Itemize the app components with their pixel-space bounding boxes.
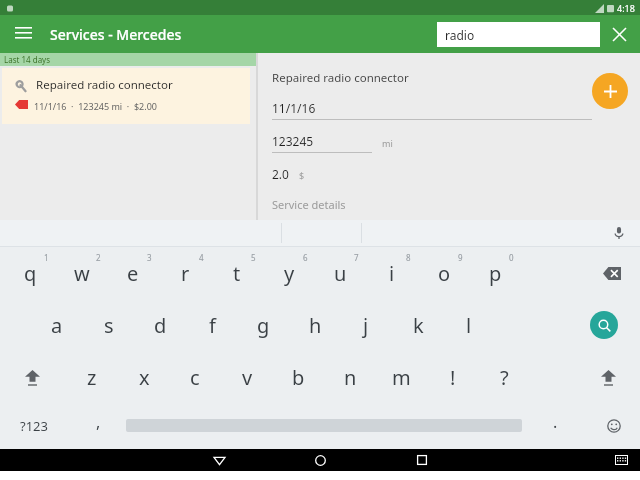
staticText: r [181,260,190,287]
button[interactable]: j [341,299,391,351]
button[interactable]: Open navigation menu [8,19,38,49]
staticText: . [553,411,558,433]
staticText: 11/1/16 [272,100,316,116]
button[interactable]: Switch keyboard [610,449,632,471]
staticText: 7 [354,252,359,263]
staticText: radio [445,27,475,43]
button[interactable]: Emoji [600,412,628,440]
staticText: 6 [303,252,308,263]
staticText: i [389,260,395,287]
button[interactable]: s [84,299,134,351]
button[interactable]: Repaired radio connector [2,68,250,124]
staticText: g [257,312,270,339]
staticText: h [309,312,322,339]
button[interactable]: p [470,247,520,299]
button[interactable]: , [78,406,118,446]
button[interactable]: r [160,247,210,299]
button[interactable]: q [5,247,55,299]
staticText: 5 [251,252,256,263]
staticText: 11/1/16 · 123245 mi · $2.00 [34,100,157,112]
button[interactable]: Search [590,311,618,339]
staticText: Repaired radio connector [272,70,409,86]
button[interactable]: x [119,351,169,403]
staticText: t [233,260,241,287]
staticText: w [74,260,90,287]
staticText: s [104,312,114,339]
button[interactable]: ? [479,351,529,403]
staticText: ! [450,364,456,391]
staticText: e [127,260,139,287]
staticText: j [363,312,369,339]
button[interactable]: Shift [588,357,628,397]
staticText: c [190,364,200,391]
staticText: p [489,260,502,287]
staticText: y [284,260,295,287]
staticText: m [392,364,411,391]
staticText: 4:18 [617,2,635,14]
button[interactable]: a [32,299,82,351]
staticText: l [466,312,472,339]
button[interactable]: v [222,351,272,403]
button[interactable]: z [67,351,117,403]
staticText: Services - Mercedes [50,25,182,44]
staticText: f [209,312,216,339]
button[interactable]: o [419,247,469,299]
staticText: ? [500,364,509,391]
staticText: k [413,312,424,339]
staticText: d [154,312,167,339]
staticText: x [139,364,150,391]
button[interactable]: n [325,351,375,403]
staticText: a [51,312,63,339]
staticText: z [87,364,97,391]
staticText: Repaired radio connector [36,77,173,93]
staticText: 0 [509,252,514,263]
staticText: 8 [406,252,411,263]
button[interactable]: d [135,299,185,351]
staticText: o [438,260,451,287]
button[interactable]: radio [437,22,600,47]
button[interactable]: Add service [592,73,628,109]
button[interactable]: k [393,299,443,351]
staticText: 2.0 [272,166,289,182]
staticText: 123245 [272,133,314,149]
staticText: Service details [272,197,346,212]
button[interactable]: Shift [12,357,52,397]
button[interactable]: Back [208,449,230,471]
staticText: 3 [147,252,152,263]
staticText: 4 [199,252,204,263]
button[interactable]: t [212,247,262,299]
staticText: mi [382,137,393,149]
button[interactable]: h [290,299,340,351]
button[interactable]: f [187,299,237,351]
button[interactable]: b [273,351,323,403]
button[interactable]: Backspace [592,253,632,293]
button[interactable]: m [376,351,426,403]
button[interactable]: . [535,406,575,446]
staticText: Last 14 days [4,54,51,65]
staticText: 2 [96,252,101,263]
button[interactable]: ! [428,351,478,403]
button[interactable]: y [264,247,314,299]
staticText: v [242,364,253,391]
staticText: 9 [458,252,463,263]
button[interactable]: e [108,247,158,299]
staticText: , [96,411,101,433]
button[interactable]: w [57,247,107,299]
staticText: 1 [44,252,49,263]
staticText: n [344,364,357,391]
staticText: b [292,364,305,391]
button[interactable]: Voice input [608,222,630,244]
button[interactable]: Recent apps [411,449,433,471]
button[interactable]: c [170,351,220,403]
button[interactable]: g [238,299,288,351]
staticText: u [334,260,347,287]
staticText: ?123 [20,417,48,435]
button[interactable]: Clear search [606,21,632,47]
staticText: q [24,260,37,287]
button[interactable]: i [367,247,417,299]
button[interactable]: Home [309,449,331,471]
button[interactable]: ?123 [8,406,60,446]
button[interactable]: u [315,247,365,299]
button[interactable]: l [444,299,494,351]
